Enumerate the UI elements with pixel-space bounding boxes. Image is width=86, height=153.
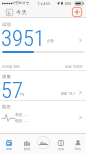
button[interactable]: Add record (72, 7, 82, 17)
staticText: 3951 (1, 25, 45, 51)
button[interactable]: 记录 (0, 134, 18, 153)
staticText: 步数 (47, 39, 55, 44)
button[interactable]: Profile (6, 9, 13, 16)
staticText: 目标 10000 (65, 64, 83, 69)
button[interactable]: 发现 (52, 134, 69, 153)
staticText: 体重 (2, 74, 11, 80)
staticText: 低压 -- (15, 118, 28, 123)
staticText: 数据 (24, 147, 30, 151)
button[interactable]: 体重 (0, 71, 86, 100)
staticText: 80% (65, 2, 72, 6)
button[interactable]: 我的 (69, 134, 86, 153)
button[interactable]: 运动 (0, 18, 86, 70)
staticText: 今天 (16, 9, 27, 16)
staticText: 记录 (6, 147, 12, 151)
staticText: 高压 -- (15, 112, 28, 117)
staticText: 发现 (58, 147, 64, 151)
staticText: 下午4:53 (37, 2, 50, 6)
staticText: 血压 (2, 104, 11, 110)
staticText: BMI 19.7 (61, 91, 76, 96)
staticText: 已完成 39% (2, 64, 20, 69)
button[interactable]: 运动 (35, 134, 52, 153)
staticText: 57 (1, 77, 23, 103)
button[interactable]: 数据 (18, 134, 35, 153)
button[interactable]: 血压 (0, 101, 86, 134)
staticText: kg (20, 91, 25, 96)
staticText: 我的 (75, 147, 81, 151)
staticText: 中国移动 (12, 1, 26, 5)
staticText: 运动 (2, 22, 11, 28)
